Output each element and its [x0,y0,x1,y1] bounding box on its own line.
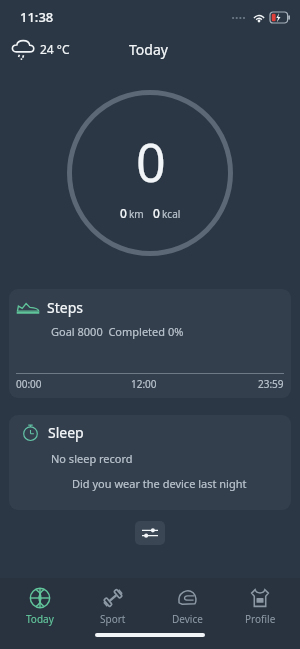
staticText: 23:59 [258,377,284,391]
staticText: Sport [100,612,126,626]
button[interactable]: Device [154,585,220,628]
button[interactable]: Sleep [9,415,291,510]
staticText: km [129,207,144,221]
staticText: No sleep record [51,451,133,466]
staticText: Goal 8000 Completed 0% [51,324,184,339]
staticText: 0 [136,126,166,197]
staticText: kcal [162,207,181,221]
staticText: 12:00 [131,377,157,391]
staticText: 0 [153,205,160,221]
button[interactable]: Settings [135,521,165,545]
button[interactable]: Profile [227,585,293,628]
staticText: Today [26,612,54,626]
staticText: 11:38 [20,8,54,26]
staticText: Device [172,612,203,626]
staticText: Steps [47,298,83,317]
staticText: Sleep [48,423,84,442]
button[interactable]: Steps [9,289,291,398]
staticText: Did you wear the device last night [72,476,247,491]
button[interactable]: Today [7,585,73,628]
staticText: Today [129,40,168,59]
staticText: 24 °C [40,41,70,57]
staticText: 00:00 [16,377,42,391]
staticText: Profile [245,612,276,626]
button[interactable]: Sport [80,585,146,628]
staticText: 0 [120,205,127,221]
